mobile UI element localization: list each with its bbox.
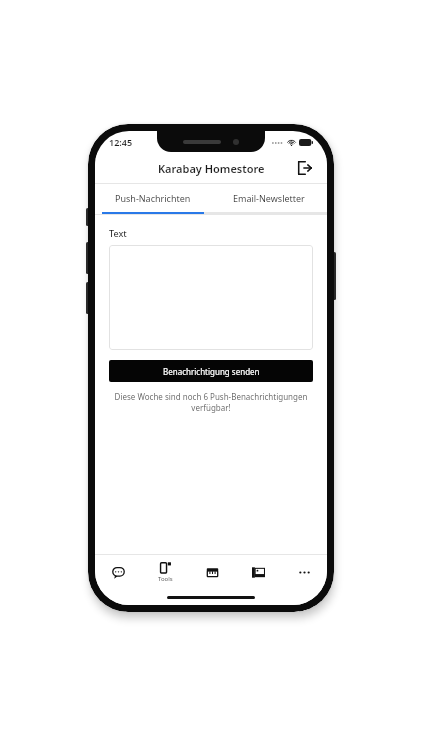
staticText: Push-Nachrichten <box>115 192 191 204</box>
button[interactable] <box>109 245 313 350</box>
staticText: Text <box>109 227 127 239</box>
staticText: Tools <box>158 575 173 583</box>
button[interactable]: Store <box>189 555 235 589</box>
staticText: 12:45 <box>109 136 133 148</box>
staticText: Benachrichtigung senden <box>163 366 260 377</box>
button[interactable]: Email-Newsletter <box>211 184 327 212</box>
button[interactable]: Push-Nachrichten <box>95 184 211 212</box>
staticText: Karabay Homestore <box>158 161 265 176</box>
button[interactable]: Benachrichtigung senden <box>109 360 313 382</box>
button[interactable]: Tools <box>142 555 189 589</box>
staticText: Diese Woche sind noch 6 Push-Benachricht… <box>109 391 313 413</box>
button[interactable]: Messages <box>95 555 142 589</box>
button[interactable]: Gallery <box>235 555 281 589</box>
button[interactable]: Logout <box>293 156 317 180</box>
staticText: Email-Newsletter <box>233 192 305 204</box>
button[interactable]: More <box>281 555 327 589</box>
